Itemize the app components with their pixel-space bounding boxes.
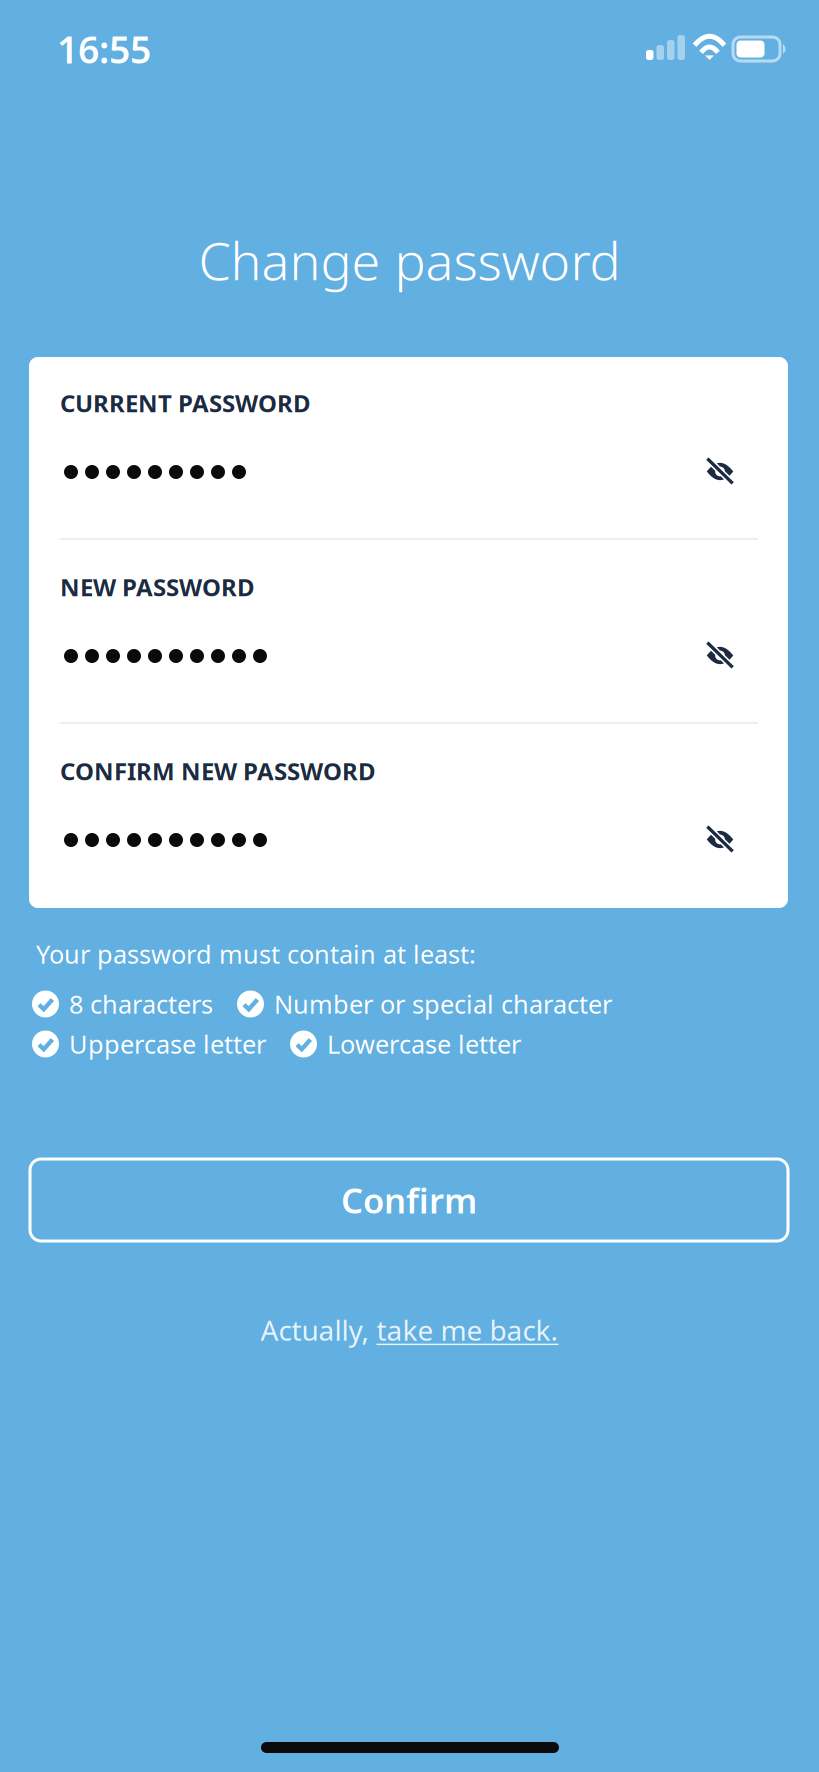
staticText: Change password	[198, 225, 620, 295]
button[interactable]: Show current password	[688, 441, 752, 501]
staticText: take me back.	[376, 1311, 558, 1349]
staticText: 16:55	[57, 24, 151, 74]
staticText: CURRENT PASSWORD	[60, 387, 311, 419]
staticText: NEW PASSWORD	[60, 571, 255, 603]
staticText: CONFIRM NEW PASSWORD	[60, 755, 376, 787]
staticText: Confirm	[341, 1177, 477, 1223]
staticText: Your password must contain at least:	[36, 937, 476, 971]
button[interactable]: Actually,	[0, 1308, 819, 1352]
button[interactable]: Show confirm new password	[688, 809, 752, 869]
button[interactable]: Show new password	[688, 625, 752, 685]
button[interactable]: Confirm	[30, 1159, 788, 1241]
staticText: Uppercase letter	[69, 1027, 266, 1061]
staticText: 8 characters	[69, 987, 213, 1021]
staticText: Actually,	[260, 1311, 376, 1349]
staticText: Number or special character	[274, 987, 612, 1021]
staticText: Lowercase letter	[327, 1027, 521, 1061]
